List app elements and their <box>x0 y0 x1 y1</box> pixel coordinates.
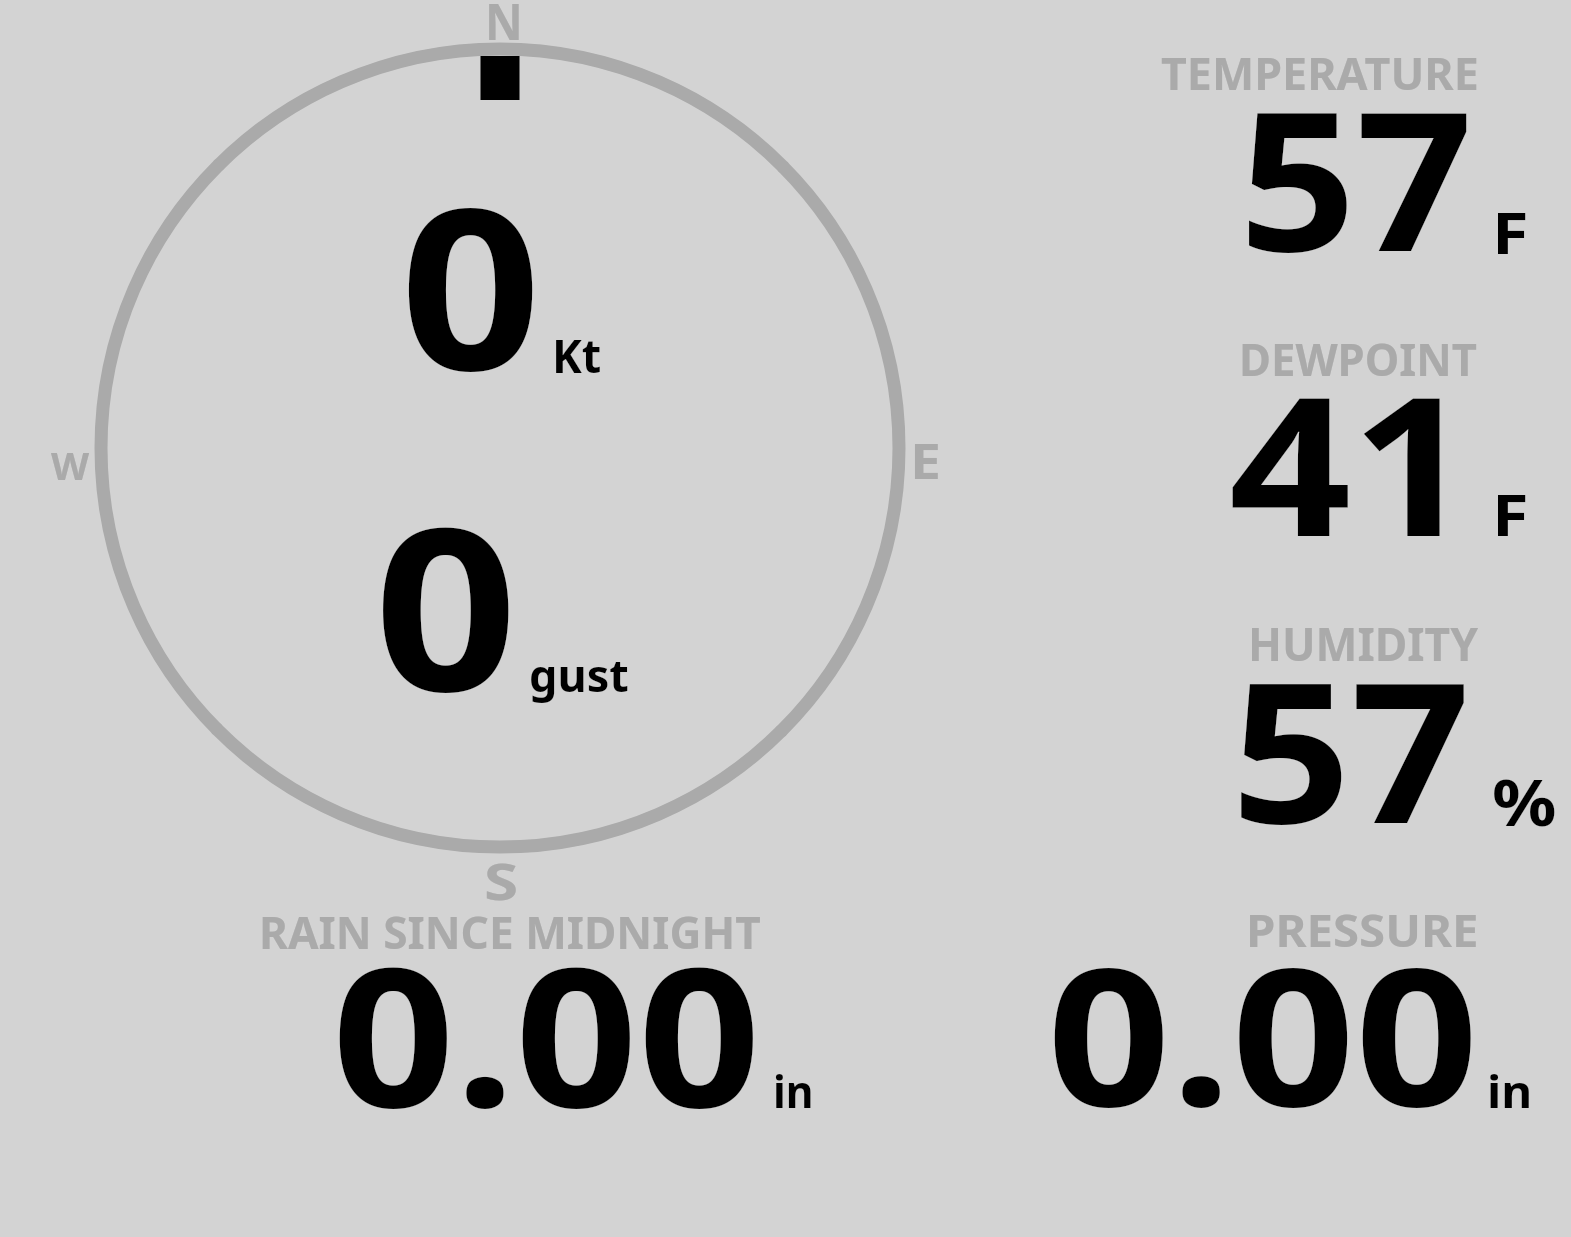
staticText: 57 <box>1231 616 1471 880</box>
staticText: 0.00 <box>332 902 761 1164</box>
button[interactable]: Wind speed and direction <box>95 44 905 854</box>
button[interactable]: Humidity 57 percent <box>1100 608 1560 878</box>
staticText: F <box>1492 475 1529 553</box>
staticText: 57 <box>1239 46 1473 308</box>
staticText: 41 <box>1229 331 1474 593</box>
staticText: E <box>910 427 942 494</box>
button[interactable]: Dewpoint 41 F <box>1100 325 1560 595</box>
button[interactable]: Pressure 0.00 in <box>1020 895 1560 1125</box>
staticText: 0 <box>374 450 518 756</box>
staticText: in <box>1487 1061 1532 1121</box>
staticText: W <box>51 440 89 490</box>
staticText: TEMPERATURE <box>1161 43 1479 103</box>
staticText: S <box>484 845 519 914</box>
staticText: HUMIDITY <box>1248 612 1479 675</box>
staticText: 0.00 <box>1047 903 1479 1162</box>
staticText: N <box>485 0 523 55</box>
button[interactable]: Rain since midnight 0.00 in <box>240 895 830 1125</box>
staticText: RAIN SINCE MIDNIGHT <box>259 902 761 962</box>
staticText: in <box>773 1061 814 1121</box>
staticText: gust <box>529 645 629 705</box>
staticText: PRESSURE <box>1246 900 1479 960</box>
staticText: Kt <box>552 324 602 387</box>
staticText: % <box>1492 758 1557 845</box>
staticText: 0 <box>400 133 541 435</box>
staticText: DEWPOINT <box>1239 329 1477 389</box>
staticText: F <box>1492 193 1529 271</box>
button[interactable]: Temperature 57 F <box>1100 40 1560 310</box>
